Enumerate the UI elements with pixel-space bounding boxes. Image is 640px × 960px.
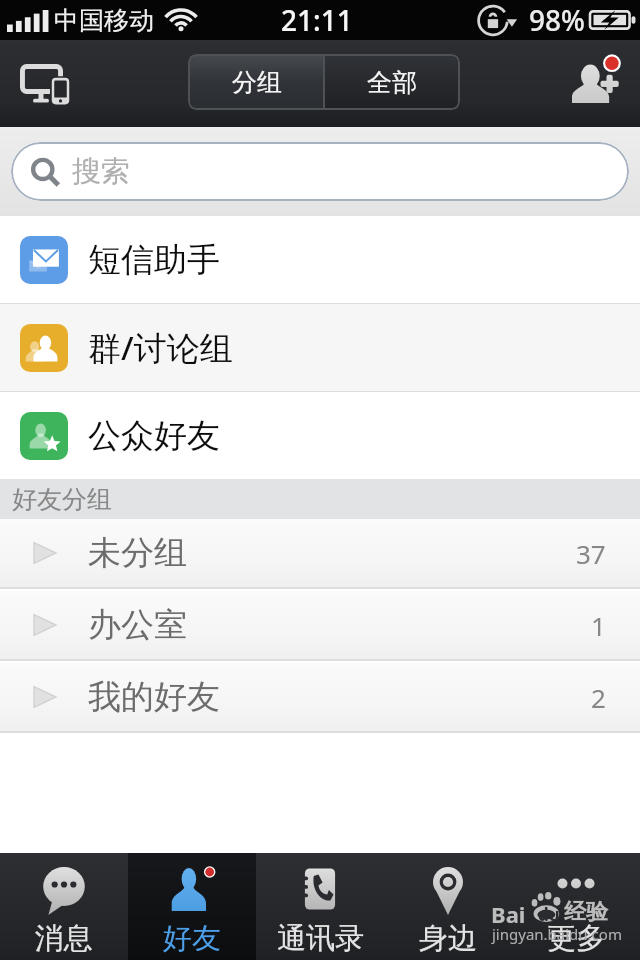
staticText: 身边	[419, 920, 477, 957]
staticText: 98%	[529, 1, 585, 39]
staticText: 更多	[547, 920, 605, 957]
button[interactable]: 办公室	[0, 591, 640, 659]
staticText: 经验	[564, 898, 608, 926]
button[interactable]: My devices	[12, 44, 78, 124]
staticText: 消息	[35, 920, 93, 957]
staticText: 1	[591, 608, 606, 643]
staticText: 未分组	[88, 532, 187, 574]
staticText: 全部	[367, 67, 417, 98]
button[interactable]: 未分组	[0, 519, 640, 587]
button[interactable]: 身边	[384, 853, 512, 960]
staticText: 好友分组	[12, 484, 112, 515]
staticText: 21:11	[281, 1, 353, 39]
button[interactable]: 搜索	[11, 142, 629, 201]
staticText: 办公室	[88, 604, 187, 646]
button[interactable]: 我的好友	[0, 663, 640, 731]
staticText: 群/讨论组	[88, 325, 233, 370]
staticText: 好友	[163, 920, 221, 957]
staticText: 2	[591, 680, 606, 715]
staticText: 通讯录	[277, 920, 364, 957]
button[interactable]: 好友	[128, 853, 256, 960]
staticText: jingyan.baidu.com	[492, 924, 622, 944]
staticText: Bai	[491, 899, 526, 929]
staticText: 中国移动	[54, 5, 154, 36]
button[interactable]: 更多	[512, 853, 640, 960]
button[interactable]: 分组	[190, 56, 323, 108]
staticText: du	[538, 903, 560, 926]
staticText: 我的好友	[88, 676, 220, 718]
button[interactable]: 公众好友	[0, 392, 640, 479]
staticText: 搜索	[72, 153, 130, 190]
button[interactable]: 全部	[325, 56, 458, 108]
button[interactable]: 通讯录	[256, 853, 384, 960]
button[interactable]: Add friend	[572, 44, 619, 124]
button[interactable]: 短信助手	[0, 216, 640, 303]
staticText: 分组	[232, 67, 282, 98]
staticText: 37	[576, 536, 606, 571]
staticText: 短信助手	[88, 239, 220, 281]
button[interactable]: 消息	[0, 853, 128, 960]
staticText: 公众好友	[88, 415, 220, 457]
button[interactable]: 群/讨论组	[0, 304, 640, 391]
